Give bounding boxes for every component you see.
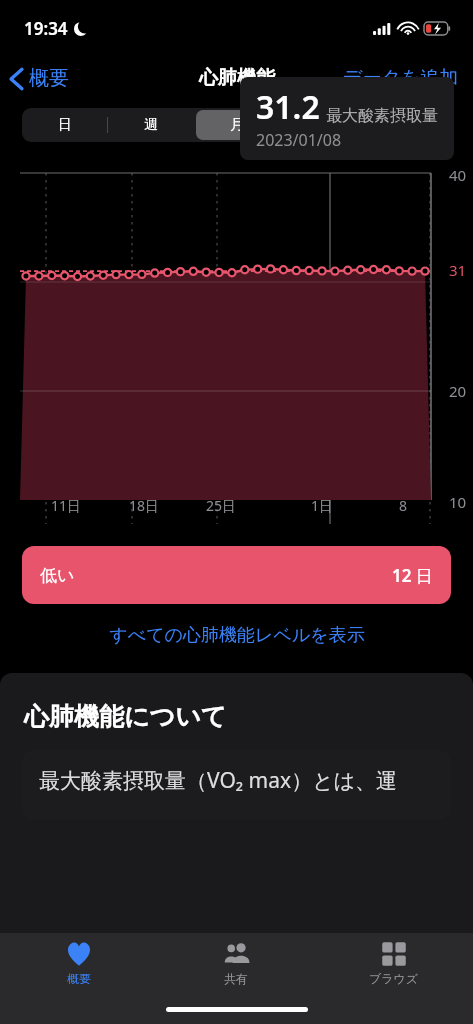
- staticText: 年: [402, 116, 416, 134]
- button[interactable]: 最大酸素摂取量（VO₂ max）とは、運: [22, 750, 451, 820]
- staticText: 共有: [224, 971, 248, 986]
- button[interactable]: 共有: [157, 933, 315, 995]
- staticText: 心肺機能: [199, 66, 275, 90]
- staticText: 25日: [206, 496, 237, 515]
- staticText: 心肺機能について: [24, 701, 227, 732]
- staticText: 31.2: [256, 85, 320, 129]
- staticText: 最大酸素摂取量: [326, 106, 438, 126]
- staticText: 10: [449, 492, 467, 512]
- button[interactable]: 概要: [0, 933, 157, 995]
- staticText: 2023/01/08: [256, 129, 342, 151]
- staticText: 19:34: [24, 17, 68, 40]
- staticText: 1日: [311, 496, 334, 515]
- button[interactable]: 日: [24, 110, 105, 140]
- staticText: 週: [144, 116, 158, 134]
- staticText: 12 日: [392, 564, 433, 587]
- button[interactable]: 6か月: [282, 110, 363, 140]
- staticText: 8: [399, 496, 408, 515]
- staticText: ブラウズ: [369, 971, 419, 986]
- other: 共有: [222, 940, 250, 968]
- button[interactable]: 低い: [22, 546, 451, 604]
- staticText: 月: [230, 116, 244, 134]
- staticText: 31: [449, 260, 467, 280]
- button[interactable]: 週: [110, 110, 191, 140]
- other: ブラウズ: [380, 940, 408, 968]
- button[interactable]: すべての心肺機能レベルを表示: [0, 620, 473, 651]
- staticText: 6か月: [304, 116, 341, 135]
- staticText: 低い: [40, 565, 75, 586]
- button[interactable]: データを追加: [329, 60, 473, 96]
- staticText: 概要: [29, 66, 69, 91]
- staticText: 18日: [129, 496, 160, 515]
- staticText: 最大酸素摂取量（VO₂ max）とは、運: [39, 766, 398, 795]
- button[interactable]: 月: [196, 110, 277, 140]
- staticText: 日: [58, 116, 72, 134]
- staticText: 40: [449, 165, 467, 185]
- staticText: 20: [449, 381, 467, 401]
- button[interactable]: 概要: [0, 62, 79, 95]
- button[interactable]: ブラウズ: [315, 933, 473, 995]
- staticText: 11日: [51, 496, 82, 515]
- staticText: すべての心肺機能レベルを表示: [109, 624, 365, 647]
- staticText: 概要: [67, 971, 91, 986]
- button[interactable]: 年: [368, 110, 449, 140]
